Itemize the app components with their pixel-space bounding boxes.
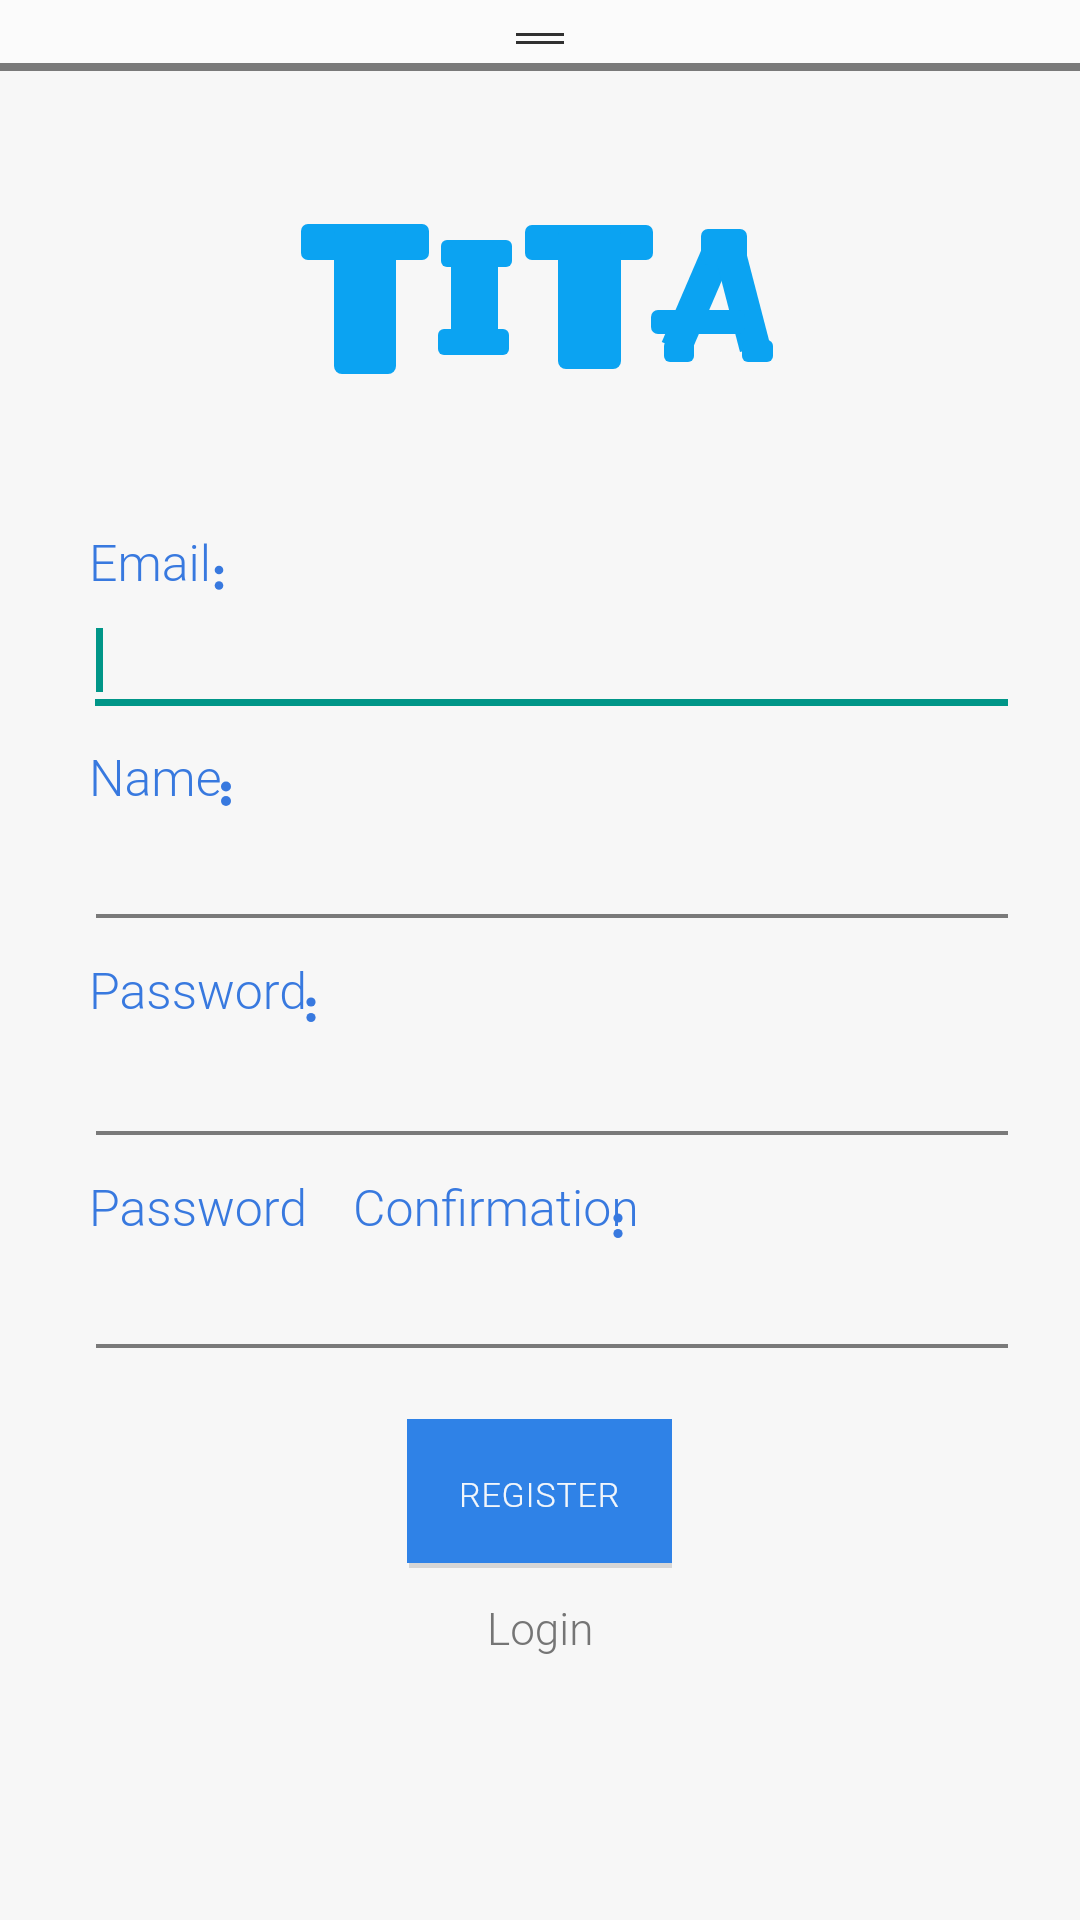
staticText: Password xyxy=(89,963,307,1022)
button[interactable]: Login xyxy=(487,1604,594,1656)
staticText: Email xyxy=(89,535,212,594)
button[interactable]: REGISTER xyxy=(407,1419,672,1563)
staticText: Password xyxy=(89,1180,307,1239)
staticText: Name xyxy=(89,750,222,809)
staticText: Confirmation xyxy=(353,1180,639,1239)
staticText: REGISTER xyxy=(459,1475,621,1515)
